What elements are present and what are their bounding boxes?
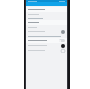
button[interactable]: Colour swatch [61,30,65,34]
button[interactable] [26,7,67,12]
button[interactable]: Selected colour [26,43,67,48]
button[interactable] [26,20,67,25]
button[interactable] [26,12,67,16]
button[interactable]: Unselected option [26,48,67,53]
button[interactable]: Selected colour [61,44,65,48]
button[interactable] [26,25,67,29]
button[interactable]: Toggle setting [26,38,67,43]
button[interactable]: Unselected option [61,49,65,53]
button[interactable]: Toggle setting [59,39,65,42]
button[interactable]: Colour swatch [26,29,67,34]
